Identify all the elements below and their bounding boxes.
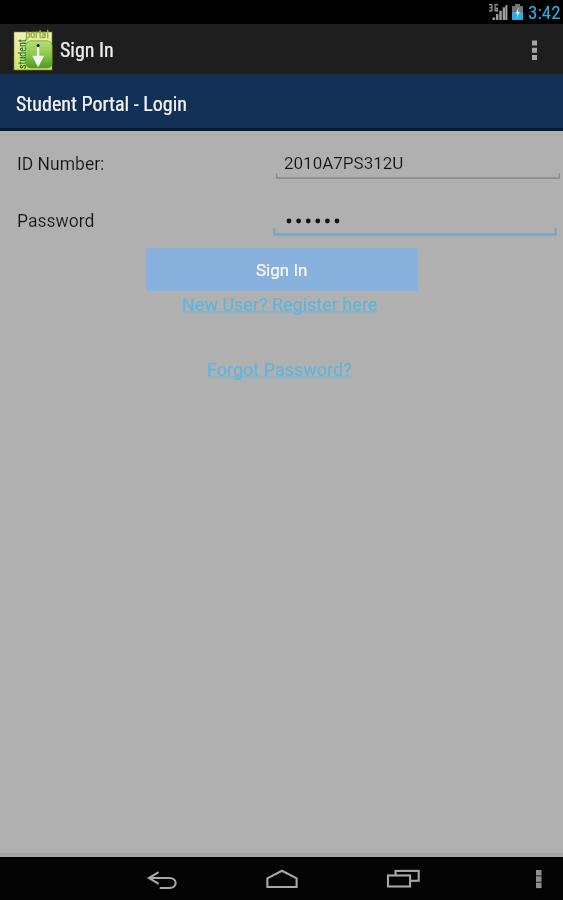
staticText: Sign In (60, 38, 114, 61)
staticText: Sign In (256, 260, 308, 280)
button[interactable] (273, 197, 557, 236)
button[interactable]: 2010A7PS312U (276, 140, 560, 179)
button[interactable]: New User? Register here (182, 294, 382, 315)
staticText: Student Portal - Login (16, 92, 187, 115)
staticText: Password (17, 211, 95, 232)
staticText: 2010A7PS312U (284, 153, 404, 173)
button[interactable]: Home (242, 857, 322, 900)
button[interactable]: Menu (524, 857, 554, 900)
button[interactable]: More options (510, 24, 558, 74)
button[interactable]: Recent apps (363, 857, 443, 900)
button[interactable]: Forgot Password? (207, 359, 357, 380)
button[interactable]: Back (123, 857, 203, 900)
staticText: ID Number: (17, 154, 105, 175)
button[interactable]: Sign In (146, 248, 418, 291)
staticText: 3:42 (528, 1, 561, 23)
